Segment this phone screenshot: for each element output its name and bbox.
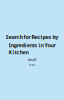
staticText: Ingredients in Your Kitchen xyxy=(8,41,55,56)
staticText: Search for Recipes by xyxy=(5,33,58,40)
staticText: test3 xyxy=(28,57,36,62)
staticText: test2 xyxy=(28,63,35,66)
